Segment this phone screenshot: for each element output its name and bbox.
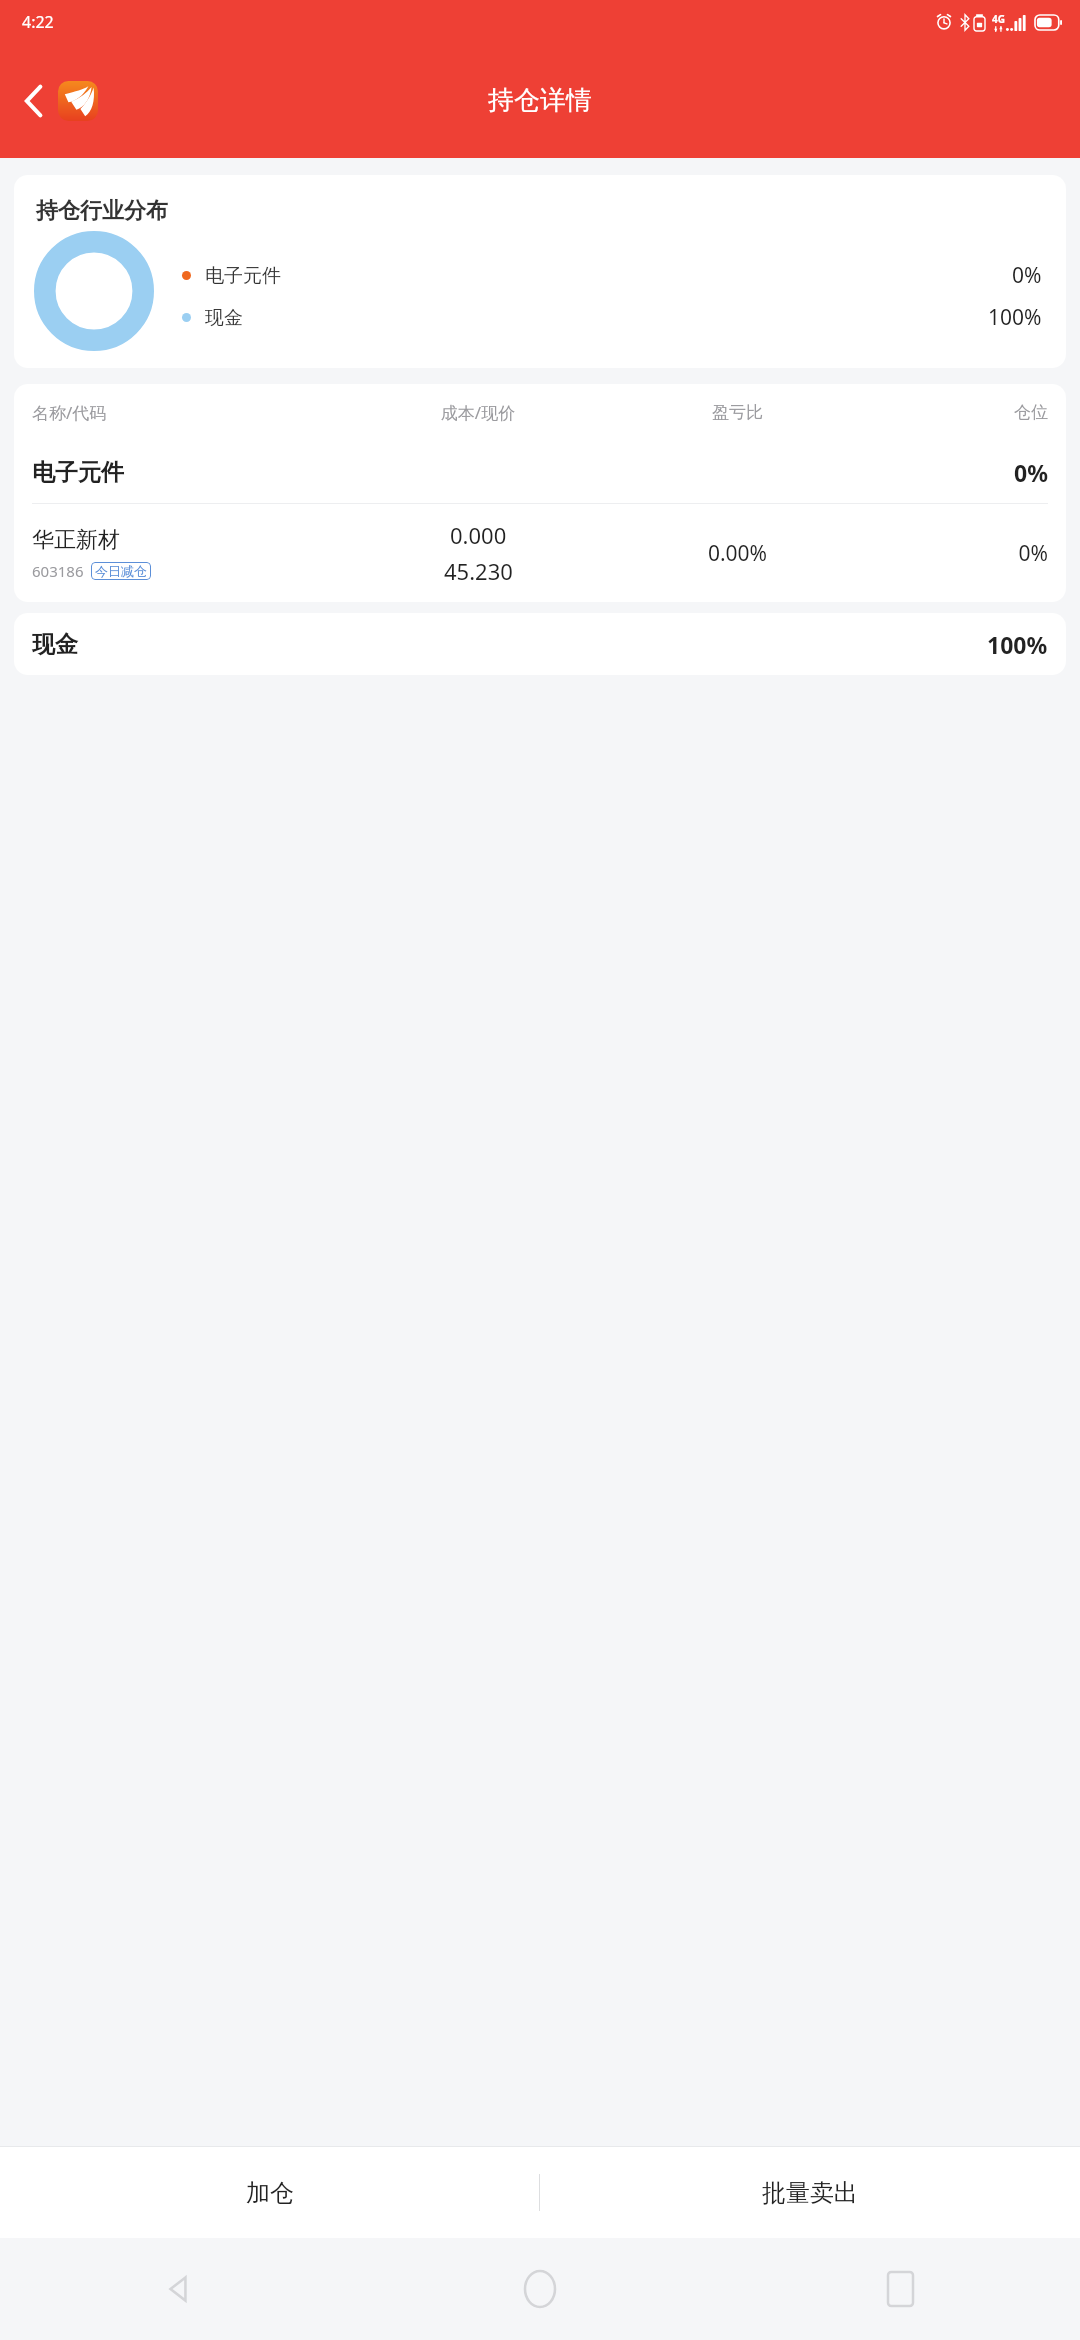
staticText: 0% xyxy=(1014,457,1048,488)
staticText: 4G xyxy=(992,12,1005,26)
button[interactable]: 批量卖出 xyxy=(540,2147,1080,2238)
button[interactable]: 加仓 xyxy=(0,2147,539,2238)
staticText: 0% xyxy=(1012,261,1042,290)
staticText: 现金 xyxy=(32,630,78,659)
button[interactable]: Back xyxy=(14,73,108,129)
staticText: 4:22 xyxy=(22,11,54,33)
staticText: 仓位 xyxy=(856,402,1048,423)
staticText: 名称/代码 xyxy=(32,401,337,424)
staticText: 100% xyxy=(987,629,1048,660)
staticText: 盈亏比 xyxy=(619,402,856,423)
staticText: 0.00% xyxy=(619,539,856,568)
button[interactable]: 电子元件 xyxy=(14,441,1066,503)
staticText: 成本/现价 xyxy=(337,401,619,424)
staticText: 45.230 xyxy=(444,556,513,586)
staticText: 电子元件 xyxy=(205,264,281,288)
staticText: 100% xyxy=(988,303,1042,332)
staticText: 加仓 xyxy=(246,2178,294,2208)
staticText: 603186 xyxy=(32,561,84,581)
button[interactable]: 现金 xyxy=(14,613,1066,675)
staticText: 华正新材 xyxy=(32,526,120,554)
button[interactable]: 华正新材 xyxy=(14,504,1066,602)
staticText: 现金 xyxy=(205,306,243,330)
staticText: 0.000 xyxy=(450,520,507,550)
staticText: 0% xyxy=(856,539,1048,568)
staticText: 持仓行业分布 xyxy=(36,197,168,225)
staticText: 持仓详情 xyxy=(488,84,592,117)
staticText: 批量卖出 xyxy=(762,2178,858,2208)
staticText: 今日减仓 xyxy=(95,563,147,579)
staticText: 电子元件 xyxy=(32,458,124,487)
